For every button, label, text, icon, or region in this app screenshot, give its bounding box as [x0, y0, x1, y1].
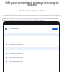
button[interactable] [6, 56, 59, 58]
staticText: Edit your screenshot settings in a snap … [2, 1, 62, 7]
staticText: A quick setting row lets you pick the la… [2, 14, 62, 21]
button[interactable] [6, 60, 59, 62]
staticText: Jenny Park / Oct 12, 2023 [5, 9, 59, 12]
button[interactable]: Action [52, 28, 58, 30]
button[interactable]: Profile [5, 27, 58, 30]
button[interactable] [6, 52, 59, 54]
button[interactable] [6, 43, 59, 45]
